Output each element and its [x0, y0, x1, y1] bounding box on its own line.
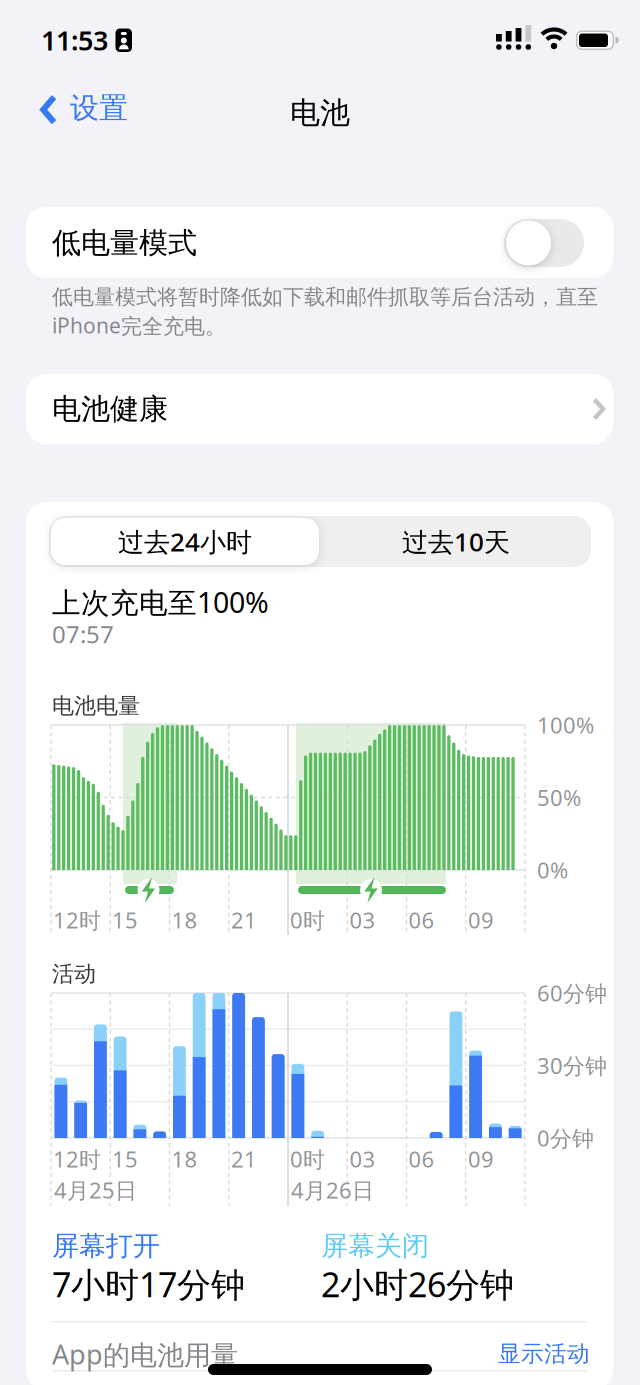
staticText: 低电量模式将暂时降低如下载和邮件抓取等后台活动，直至 — [52, 284, 598, 310]
staticText: 0时 — [290, 1144, 325, 1174]
staticText: 06 — [408, 1144, 434, 1174]
staticText: 屏幕关闭 — [321, 1229, 429, 1263]
staticText: 21 — [231, 1144, 257, 1174]
staticText: 屏幕打开 — [52, 1229, 160, 1263]
staticText: 09 — [468, 905, 494, 935]
button[interactable]: 过去24小时 — [51, 518, 319, 565]
staticText: 显示活动 — [498, 1340, 590, 1368]
staticText: 03 — [349, 905, 375, 935]
staticText: 21 — [231, 905, 257, 935]
staticText: 12时 — [53, 905, 101, 935]
button[interactable]: 低电量模式 — [504, 219, 584, 267]
staticText: App的电池用量 — [52, 1336, 238, 1372]
button[interactable]: 电池健康 — [26, 374, 613, 444]
staticText: 电池健康 — [52, 391, 168, 427]
staticText: 15 — [112, 905, 138, 935]
staticText: 上次充电至100% — [52, 583, 269, 621]
staticText: 18 — [171, 905, 197, 935]
staticText: 电池 — [290, 95, 350, 131]
button[interactable]: 过去10天 — [321, 518, 591, 565]
staticText: 7小时17分钟 — [52, 1261, 245, 1307]
staticText: 07:57 — [52, 618, 114, 650]
staticText: 50% — [537, 783, 581, 812]
staticText: 0分钟 — [537, 1123, 594, 1153]
staticText: 低电量模式 — [52, 225, 197, 261]
staticText: 06 — [408, 905, 434, 935]
staticText: 100% — [537, 710, 594, 740]
staticText: 4月26日 — [291, 1175, 374, 1205]
button[interactable]: 显示活动 — [498, 1340, 590, 1368]
staticText: 0时 — [290, 905, 325, 935]
staticText: 过去24小时 — [118, 524, 252, 559]
staticText: 12时 — [53, 1144, 101, 1174]
staticText: 15 — [112, 1144, 138, 1174]
staticText: 4月25日 — [54, 1175, 137, 1205]
staticText: 2小时26分钟 — [321, 1261, 514, 1307]
button[interactable]: 设置 — [14, 95, 124, 129]
staticText: 18 — [171, 1144, 197, 1174]
staticText: 活动 — [52, 960, 96, 987]
staticText: 03 — [349, 1144, 375, 1174]
staticText: 11:53 — [41, 22, 108, 58]
staticText: iPhone完全充电。 — [52, 311, 226, 339]
staticText: 过去10天 — [402, 524, 510, 559]
staticText: 电池电量 — [52, 692, 140, 719]
staticText: 设置 — [70, 90, 128, 126]
staticText: 09 — [468, 1144, 494, 1174]
staticText: 60分钟 — [537, 978, 607, 1008]
staticText: 30分钟 — [537, 1051, 607, 1080]
staticText: 0% — [537, 855, 568, 885]
